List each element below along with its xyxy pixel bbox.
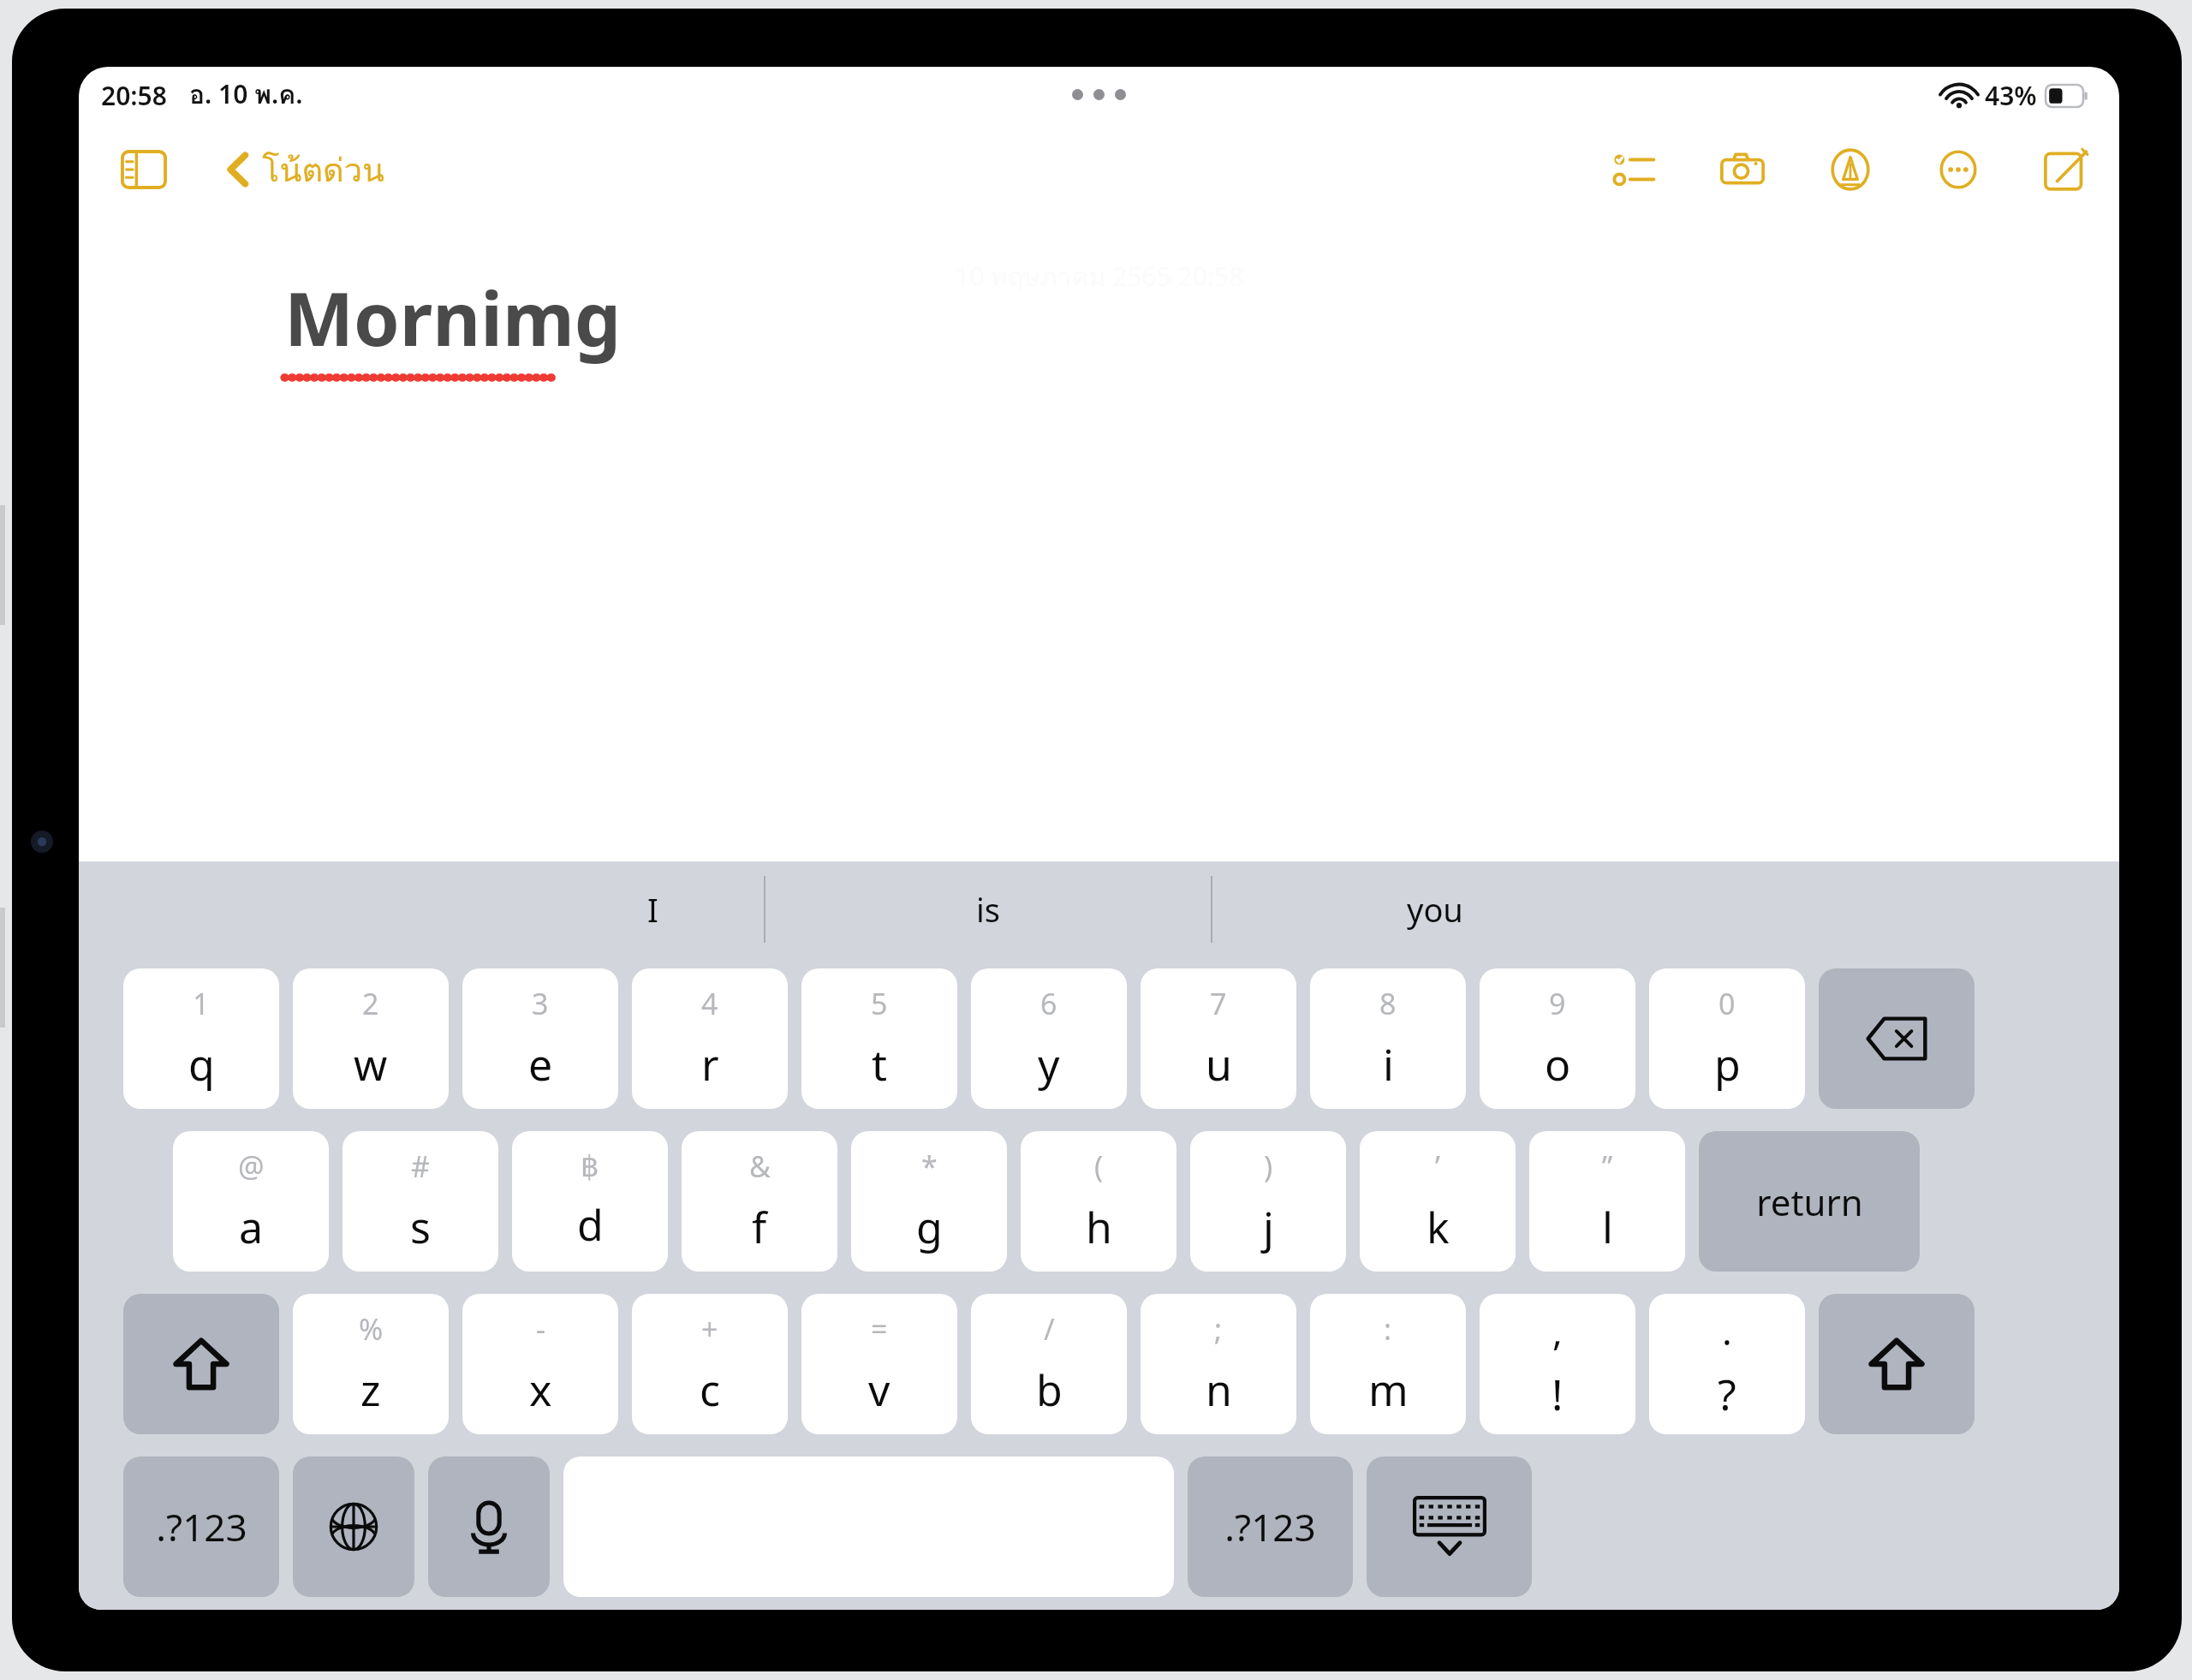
staticText: 0 (1718, 984, 1736, 1023)
staticText: = (871, 1309, 888, 1349)
staticText: g (916, 1198, 943, 1256)
staticText: k (1427, 1198, 1450, 1256)
staticText: m (1368, 1361, 1409, 1419)
button[interactable]: 2 (293, 968, 449, 1109)
staticText: 20:58 (101, 78, 167, 113)
staticText: 2 (362, 984, 379, 1023)
button[interactable]: Change keyboard (293, 1457, 414, 1597)
staticText: @ (238, 1147, 265, 1186)
button[interactable]: @ (173, 1131, 329, 1272)
button[interactable]: ) (1190, 1131, 1346, 1272)
staticText: : (1384, 1309, 1392, 1349)
button[interactable]: โน้ตด่วน (219, 135, 392, 204)
staticText: e (528, 1035, 553, 1093)
staticText: % (359, 1309, 384, 1349)
button[interactable]: 9 (1480, 968, 1635, 1109)
staticText: h (1086, 1198, 1112, 1256)
staticText: ) (1264, 1147, 1273, 1186)
button[interactable]: 1 (123, 968, 279, 1109)
button[interactable]: 8 (1310, 968, 1466, 1109)
staticText: ( (1094, 1147, 1104, 1186)
staticText: l (1602, 1198, 1613, 1256)
button[interactable]: , (1480, 1294, 1635, 1434)
button[interactable]: + (632, 1294, 788, 1434)
button[interactable]: is (765, 861, 1211, 957)
button[interactable]: # (342, 1131, 498, 1272)
button[interactable]: Checklist (1602, 137, 1667, 202)
staticText: อ. 10 พ.ค. (189, 74, 303, 116)
button[interactable]: Camera (1710, 137, 1775, 202)
staticText: ” (1602, 1147, 1613, 1186)
staticText: ฿ (581, 1149, 599, 1183)
staticText: 8 (1379, 984, 1397, 1023)
button[interactable]: ฿ (512, 1131, 668, 1272)
staticText: .?123 (156, 1501, 247, 1552)
staticText: 3 (532, 984, 549, 1023)
staticText: x (529, 1361, 552, 1419)
button[interactable]: More (1926, 137, 1991, 202)
button[interactable]: 3 (462, 968, 618, 1109)
button[interactable]: Hide keyboard (1367, 1457, 1532, 1597)
button[interactable]: / (971, 1294, 1127, 1434)
staticText: Mornimg (284, 267, 622, 367)
button[interactable]: * (851, 1131, 1007, 1272)
staticText: t (872, 1035, 888, 1093)
button[interactable]: Dictate (428, 1457, 550, 1597)
staticText: is (976, 887, 1001, 932)
staticText: a (239, 1198, 264, 1256)
staticText: / (1044, 1309, 1055, 1349)
staticText: 43% (1985, 78, 2037, 113)
button[interactable]: Backspace (1819, 968, 1975, 1109)
staticText: f (752, 1198, 767, 1256)
staticText: z (360, 1361, 381, 1419)
button[interactable]: & (682, 1131, 837, 1272)
staticText: ’ (1435, 1147, 1440, 1186)
staticText: return (1756, 1177, 1863, 1226)
button[interactable]: . (1649, 1294, 1805, 1434)
staticText: * (921, 1147, 938, 1186)
staticText: s (410, 1198, 431, 1256)
staticText: p (1714, 1035, 1741, 1093)
button[interactable]: 6 (971, 968, 1127, 1109)
staticText: w (354, 1035, 388, 1093)
staticText: + (701, 1309, 718, 1349)
button[interactable]: 4 (632, 968, 788, 1109)
button[interactable]: : (1310, 1294, 1466, 1434)
button[interactable]: % (293, 1294, 449, 1434)
staticText: y (1038, 1035, 1060, 1093)
button[interactable]: .?123 (1188, 1457, 1353, 1597)
button[interactable]: ” (1529, 1131, 1685, 1272)
staticText: 4 (701, 984, 718, 1023)
button[interactable]: ’ (1360, 1131, 1516, 1272)
button[interactable]: .?123 (123, 1457, 279, 1597)
button[interactable]: = (801, 1294, 957, 1434)
button[interactable]: 7 (1141, 968, 1296, 1109)
button[interactable]: you (1212, 861, 1658, 957)
staticText: , (1552, 1305, 1563, 1356)
button[interactable]: ; (1141, 1294, 1296, 1434)
staticText: I (647, 887, 658, 932)
button[interactable]: return (1699, 1131, 1920, 1272)
button[interactable]: - (462, 1294, 618, 1434)
button[interactable]: ( (1021, 1131, 1176, 1272)
button[interactable]: 0 (1649, 968, 1805, 1109)
staticText: โน้ตด่วน (262, 144, 385, 195)
staticText: 9 (1549, 984, 1566, 1023)
staticText: 7 (1210, 984, 1227, 1023)
button[interactable]: Shift (123, 1294, 279, 1434)
button[interactable]: Compose (2034, 137, 2099, 202)
staticText: .?123 (1224, 1501, 1316, 1552)
button[interactable]: Show sidebar (110, 135, 178, 204)
staticText: . (1722, 1305, 1732, 1356)
button[interactable]: Markup (1818, 137, 1883, 202)
staticText: r (701, 1035, 719, 1093)
button[interactable]: Shift (1819, 1294, 1975, 1434)
staticText: you (1407, 887, 1463, 932)
button[interactable]: 5 (801, 968, 957, 1109)
staticText: d (577, 1195, 604, 1254)
staticText: 1 (193, 984, 210, 1023)
staticText: j (1263, 1198, 1274, 1256)
button[interactable]: I (541, 861, 764, 957)
staticText: u (1206, 1035, 1232, 1093)
